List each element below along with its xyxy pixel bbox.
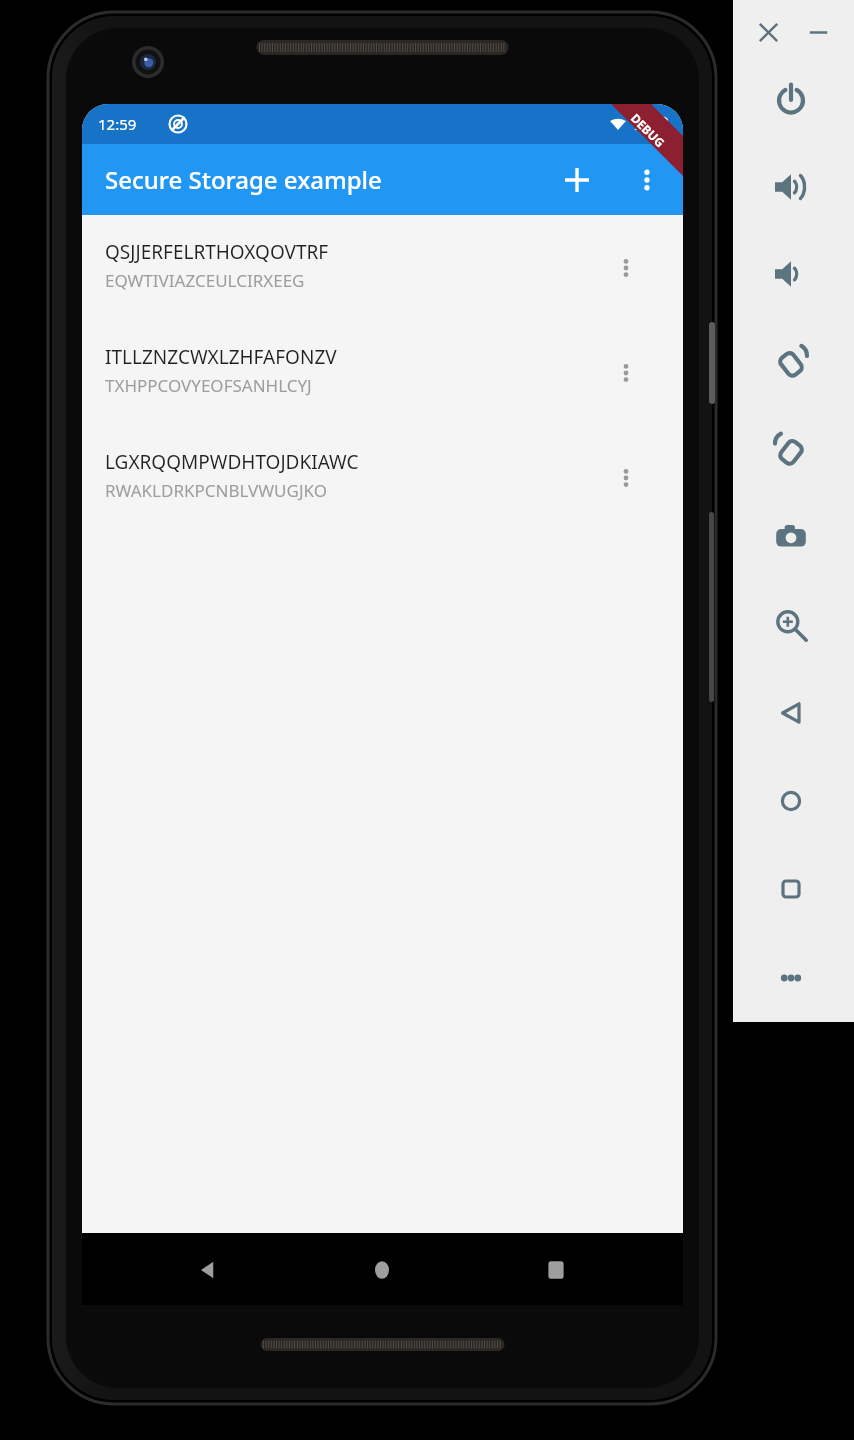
button[interactable]: More <box>763 950 819 1006</box>
button[interactable]: More options <box>623 156 671 204</box>
button[interactable]: LGXRQQMPWDHTOJDKIAWC <box>82 425 683 530</box>
staticText: TXHPPCOVYEOFSANHLCYJ <box>105 374 312 397</box>
staticText: 12:59 <box>98 114 137 134</box>
button[interactable]: Power <box>763 71 819 127</box>
button[interactable]: Home <box>358 1246 406 1294</box>
staticText: EQWTIVIAZCEULCIRXEEG <box>105 269 305 292</box>
staticText: DEBUG <box>627 109 668 150</box>
button[interactable]: Item options <box>604 246 648 290</box>
button[interactable]: Overview <box>763 861 819 917</box>
button[interactable]: Rotate left <box>763 334 819 390</box>
staticText: QSJJERFELRTHOXQOVTRF <box>105 239 329 265</box>
button[interactable]: Item options <box>604 351 648 395</box>
button[interactable]: Back <box>184 1246 232 1294</box>
button[interactable]: Home <box>763 773 819 829</box>
button[interactable]: ITLLZNZCWXLZHFAFONZV <box>82 320 683 425</box>
button[interactable]: Take screenshot <box>763 509 819 565</box>
button[interactable]: Close <box>748 12 788 52</box>
button[interactable]: Rotate right <box>763 422 819 478</box>
button[interactable]: Minimize <box>798 12 838 52</box>
button[interactable]: Volume down <box>763 246 819 302</box>
button[interactable]: Add <box>553 156 601 204</box>
staticText: LGXRQQMPWDHTOJDKIAWC <box>105 449 359 475</box>
button[interactable]: Recent apps <box>532 1246 580 1294</box>
button[interactable]: Back <box>763 685 819 741</box>
staticText: RWAKLDRKPCNBLVWUGJKO <box>105 479 327 502</box>
button[interactable]: QSJJERFELRTHOXQOVTRF <box>82 215 683 320</box>
button[interactable]: Zoom <box>763 597 819 653</box>
button[interactable]: Volume up <box>763 159 819 215</box>
button[interactable]: Item options <box>604 456 648 500</box>
staticText: Secure Storage example <box>105 163 382 196</box>
staticText: ITLLZNZCWXLZHFAFONZV <box>105 344 337 370</box>
